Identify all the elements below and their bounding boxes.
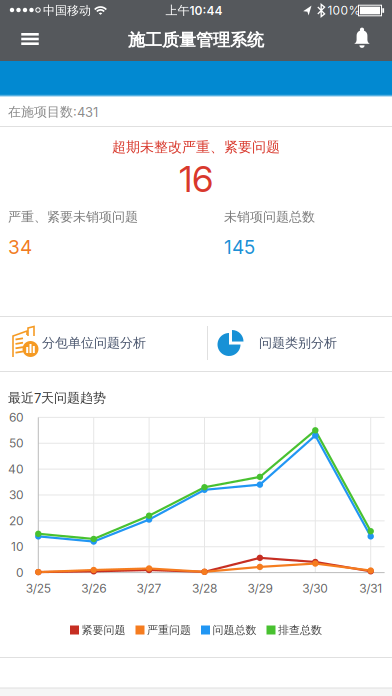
staticText: 3/31 [359, 581, 382, 596]
staticText: 10 [11, 539, 24, 554]
staticText: 最近7天问题趋势 [8, 390, 106, 406]
button[interactable] [15, 24, 45, 54]
staticText: 问题总数 [212, 623, 256, 637]
staticText: 3/29 [247, 581, 272, 596]
staticText: 20 [9, 514, 24, 528]
staticText: 100% [327, 3, 360, 18]
staticText: 0 [16, 565, 24, 580]
staticText: 未销项问题总数 [224, 209, 315, 225]
staticText: 3/25 [26, 581, 51, 596]
staticText: 60 [9, 410, 24, 425]
staticText: 在施项目数:431 [8, 104, 98, 120]
staticText: 严重、紧要未销项问题 [8, 209, 138, 225]
staticText: 施工质量管理系统 [128, 29, 264, 51]
staticText: 16 [179, 157, 213, 201]
staticText: 3/30 [302, 581, 328, 596]
staticText: 问题类别分析 [259, 335, 337, 351]
staticText: 3/27 [137, 581, 162, 596]
staticText: 排查总数 [278, 623, 322, 637]
button[interactable]: 分包单位问题分析 [0, 321, 196, 365]
button[interactable] [347, 23, 377, 53]
staticText: 145 [224, 235, 255, 258]
staticText: 超期未整改严重、紧要问题 [112, 138, 280, 156]
staticText: 50 [9, 436, 24, 450]
staticText: 3/28 [192, 581, 217, 596]
staticText: 中国移动 [43, 3, 91, 18]
staticText: 分包单位问题分析 [42, 335, 146, 351]
staticText: 紧要问题 [81, 623, 125, 637]
staticText: 上午10:44 [165, 3, 222, 18]
staticText: 3/26 [81, 581, 106, 596]
button[interactable]: 问题类别分析 [207, 321, 392, 365]
staticText: 40 [8, 462, 24, 476]
staticText: 34 [8, 235, 32, 258]
staticText: 严重问题 [147, 623, 191, 637]
staticText: 30 [9, 488, 24, 502]
